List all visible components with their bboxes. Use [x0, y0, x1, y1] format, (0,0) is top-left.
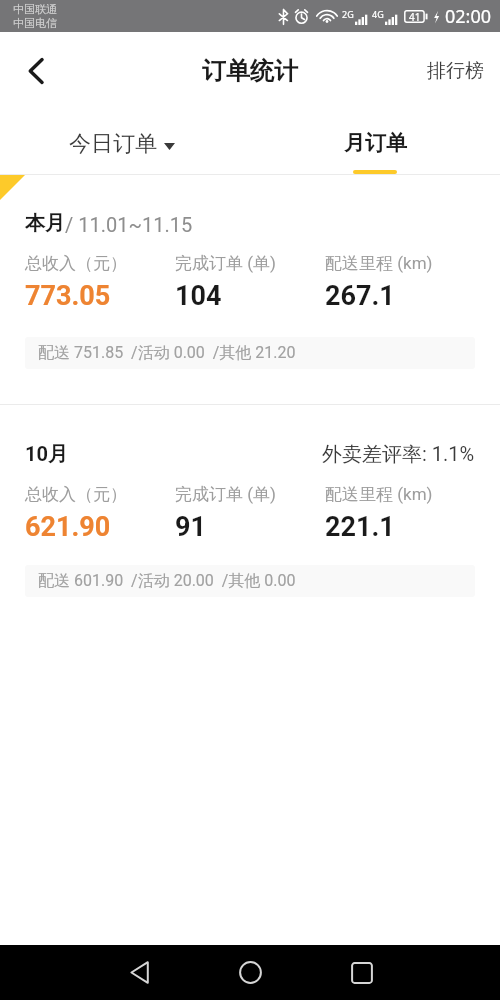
staticText: 总收入（元） [25, 253, 127, 274]
staticText: 104 [175, 280, 222, 312]
staticText: 完成订单 (单) [175, 253, 276, 274]
staticText: 总收入（元） [25, 484, 127, 505]
button[interactable]: Back [14, 49, 58, 93]
button[interactable]: 排行榜 [420, 51, 491, 91]
staticText: 配送 751.85 /活动 0.00 /其他 21.20 [38, 343, 296, 363]
staticText: 本月 [25, 211, 65, 236]
staticText: 4G [372, 8, 384, 20]
staticText: 221.1 [325, 511, 395, 543]
button[interactable]: 月订单 [330, 130, 420, 174]
staticText: 773.05 [25, 280, 111, 312]
staticText: 2G [342, 8, 354, 20]
staticText: 外卖差评率: 1.1% [322, 442, 475, 467]
staticText: 完成订单 (单) [175, 484, 276, 505]
staticText: 91 [175, 511, 206, 543]
staticText: 10月 [25, 442, 68, 467]
button[interactable]: Home [222, 950, 278, 995]
staticText: 订单统计 [202, 56, 298, 86]
staticText: 中国联通 [13, 2, 57, 16]
staticText: 排行榜 [427, 59, 484, 83]
staticText: 02:00 [445, 4, 492, 29]
staticText: 621.90 [25, 511, 111, 543]
staticText: 配送 601.90 /活动 20.00 /其他 0.00 [38, 571, 296, 591]
staticText: 配送里程 (km) [325, 253, 433, 274]
staticText: 今日订单 [69, 130, 157, 158]
staticText: 41 [409, 10, 421, 23]
staticText: 配送里程 (km) [325, 484, 433, 505]
button[interactable]: Back [111, 950, 167, 995]
staticText: / 11.01~11.15 [65, 213, 193, 236]
staticText: 267.1 [325, 280, 395, 312]
button[interactable]: Recent apps [334, 950, 390, 995]
button[interactable]: 今日订单 [61, 125, 183, 163]
staticText: 中国电信 [13, 16, 57, 30]
staticText: 月订单 [344, 130, 407, 156]
